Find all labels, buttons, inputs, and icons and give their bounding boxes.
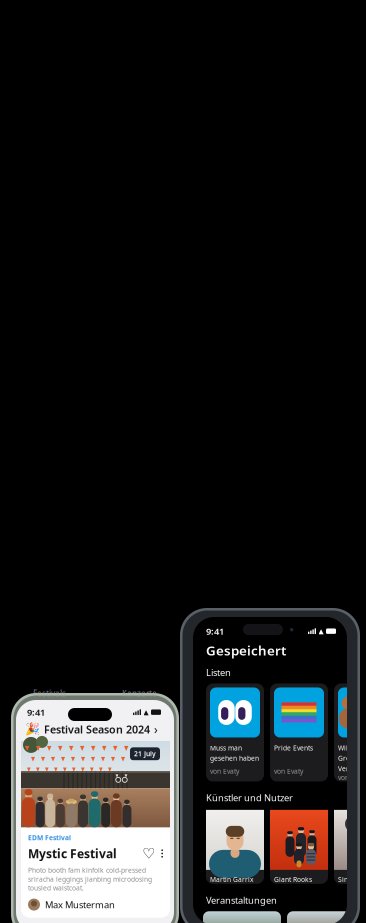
button[interactable]: Martin Garrix (206, 810, 264, 884)
staticText: 9:41 (27, 706, 45, 718)
staticText: 9:41 (206, 625, 224, 637)
staticText: 21 July (134, 749, 156, 758)
button[interactable]: Sina (334, 810, 366, 884)
staticText: gesehen haben (210, 754, 259, 763)
staticText: Veranstaltungen (206, 894, 277, 906)
staticText: Pride Events (274, 743, 313, 752)
button[interactable] (287, 911, 365, 923)
staticText: › (154, 721, 158, 737)
staticText: Vera (338, 764, 353, 773)
staticText: Mystic Festival (28, 845, 117, 861)
staticText: Gespeichert (206, 641, 286, 659)
staticText: Photo booth fam kinfolk cold-pressed sri… (28, 866, 152, 892)
staticText: Festival Season 2024 (44, 722, 150, 736)
staticText: Wild (338, 743, 352, 752)
staticText: EDM Festival (28, 833, 71, 842)
staticText: von Evaty (274, 767, 303, 775)
button[interactable]: Like (142, 845, 155, 862)
staticText: ▲ (318, 627, 323, 635)
button[interactable]: Wild (334, 683, 366, 781)
staticText: Martin Garrix (210, 875, 254, 884)
staticText: Künstler und Nutzer (206, 791, 293, 804)
staticText: Listen (206, 666, 231, 678)
staticText: Groß (338, 754, 354, 763)
button[interactable]: More options (161, 849, 163, 858)
staticText: Konzerte (122, 688, 157, 699)
button[interactable]: 🎉 (16, 718, 158, 737)
staticText: von Evaty (210, 767, 239, 775)
staticText: ▲ (143, 708, 148, 716)
staticText: Max Musterman (45, 898, 115, 911)
staticText: Festivals (33, 688, 66, 699)
staticText: Giant Rooks (274, 875, 312, 884)
staticText: Muss man (210, 743, 242, 752)
button[interactable]: Giant Rooks (270, 810, 328, 884)
staticText: Sina (338, 875, 352, 884)
staticText: von h (338, 773, 355, 782)
staticText: 🎉 (25, 722, 40, 736)
button[interactable]: Muss man (206, 683, 264, 781)
button[interactable]: Pride Events (270, 683, 328, 781)
button[interactable] (203, 911, 281, 923)
staticText: ♡ (142, 845, 155, 862)
